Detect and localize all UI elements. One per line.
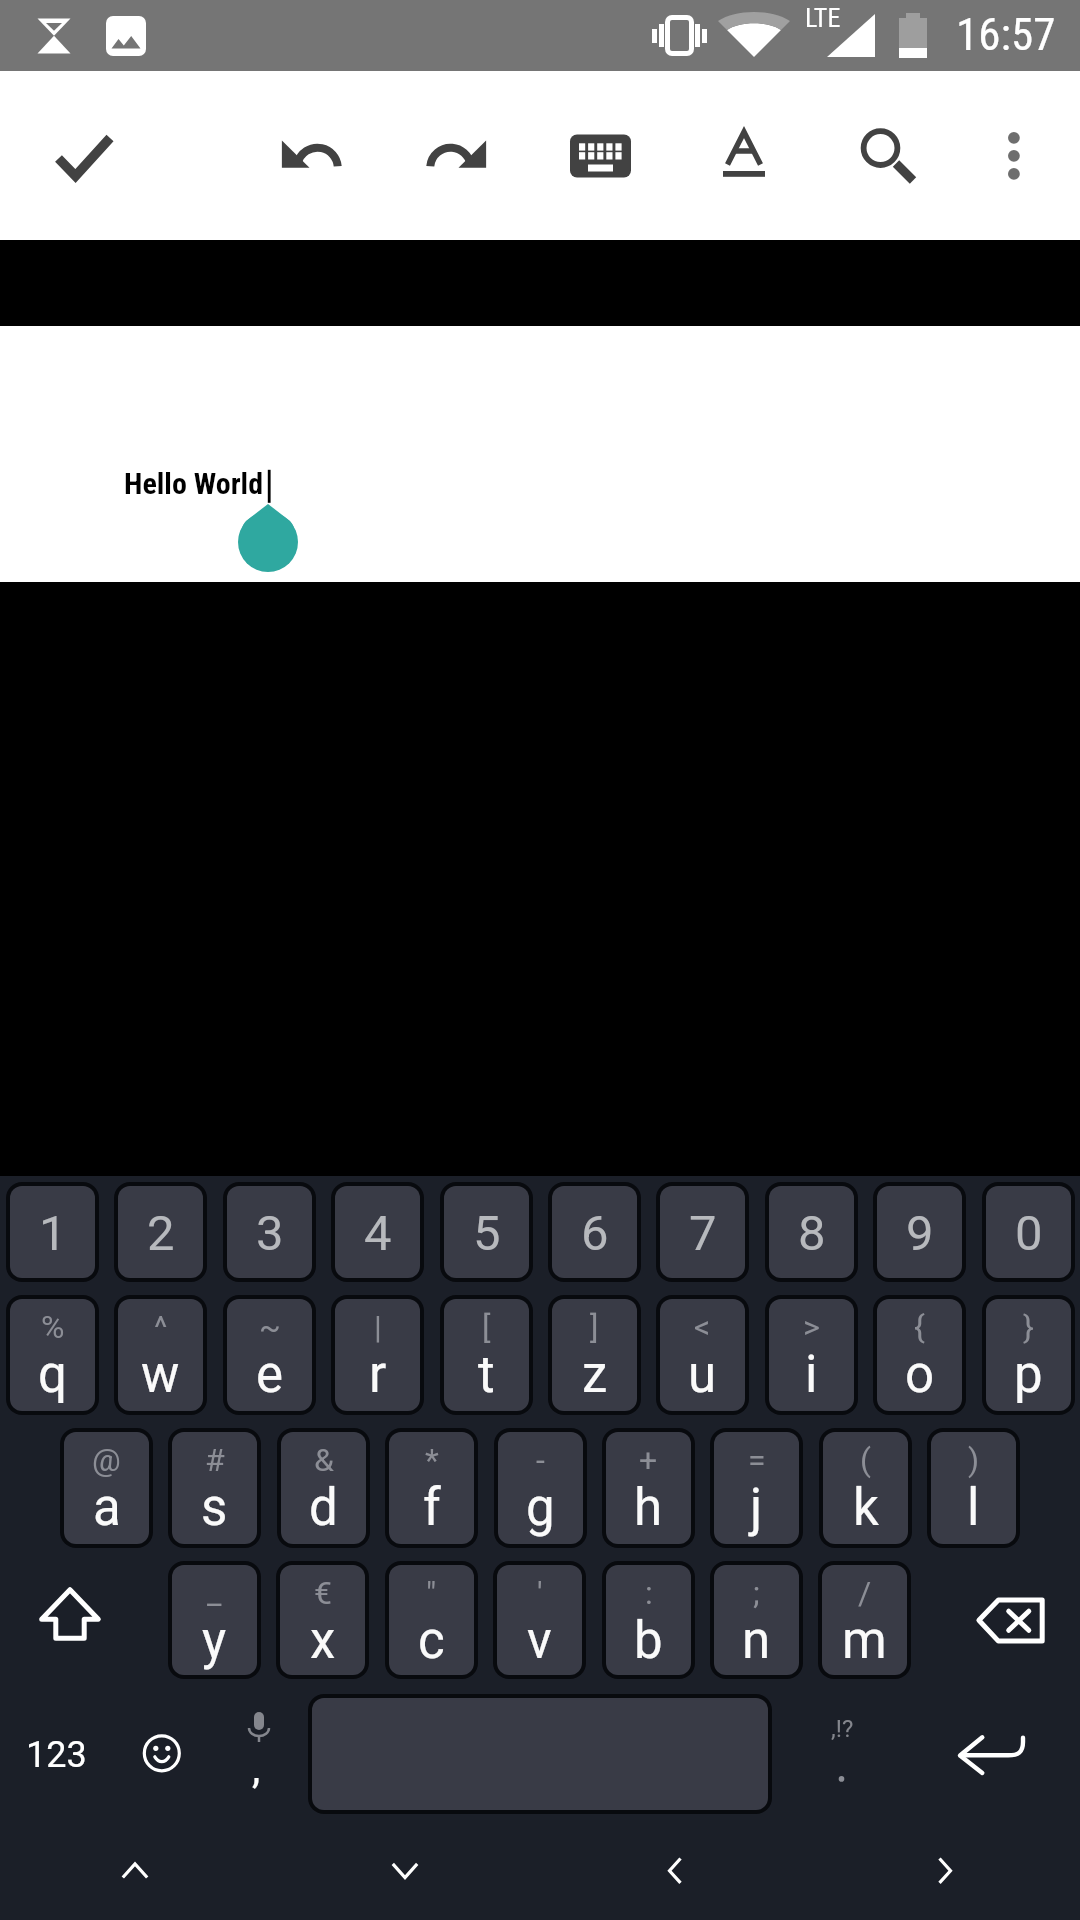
button[interactable]: * [389,1432,474,1544]
button[interactable]: % [10,1299,95,1411]
button[interactable]: ' [497,1565,582,1675]
staticText: ,!? [831,1715,854,1743]
button[interactable]: Search [838,109,930,201]
button[interactable]: 0 [986,1186,1071,1278]
button[interactable]: 6 [552,1186,637,1278]
button[interactable]: € [280,1565,365,1675]
button[interactable]: } [986,1299,1071,1411]
staticText: k [853,1478,879,1538]
button[interactable]: 4 [335,1186,420,1278]
button[interactable]: 2 [118,1186,203,1278]
staticText: 5 [473,1205,501,1262]
staticText: y [202,1611,227,1671]
staticText: h [634,1478,663,1538]
button[interactable]: Move right [810,1824,1080,1920]
staticText: : [645,1574,653,1612]
staticText: j [750,1478,763,1538]
staticText: i [805,1345,818,1405]
staticText: 4 [364,1205,392,1262]
button[interactable]: " [389,1565,474,1675]
button[interactable]: _ [172,1565,257,1675]
button[interactable]: ; [714,1565,799,1675]
staticText: | [374,1308,382,1346]
button[interactable]: Period [790,1694,900,1812]
button[interactable]: # [172,1432,257,1544]
button[interactable]: Shift [8,1561,128,1679]
staticText: 2 [147,1205,175,1262]
staticText: o [905,1345,935,1405]
staticText: LTE [805,3,841,33]
staticText: > [803,1308,820,1346]
staticText: w [141,1345,180,1405]
button[interactable]: Done [38,109,130,201]
button[interactable]: 9 [877,1186,962,1278]
staticText: b [634,1611,663,1671]
staticText: x [310,1611,336,1671]
staticText: - [536,1441,545,1479]
staticText: " [426,1574,437,1612]
staticText: ' [537,1574,543,1612]
button[interactable]: ~ [227,1299,312,1411]
button[interactable]: { [877,1299,962,1411]
button[interactable]: Backspace [940,1561,1072,1679]
button[interactable]: | [335,1299,420,1411]
button[interactable]: Redo [410,109,502,201]
button[interactable]: Numbers and symbols [4,1694,108,1812]
button[interactable]: < [660,1299,745,1411]
button[interactable]: / [822,1565,907,1675]
button[interactable]: Move left [540,1824,810,1920]
staticText: 3 [256,1205,284,1262]
staticText: 6 [581,1205,609,1262]
staticText: g [526,1478,555,1538]
button[interactable]: 3 [227,1186,312,1278]
button[interactable]: Emoji [120,1694,204,1812]
button[interactable]: = [714,1432,799,1544]
staticText: t [478,1345,495,1405]
staticText: ] [590,1308,599,1346]
staticText: < [694,1308,711,1346]
button[interactable]: ) [931,1432,1016,1544]
button[interactable]: 7 [660,1186,745,1278]
staticText: € [314,1574,332,1612]
staticText: _ [207,1574,222,1612]
button[interactable]: ] [552,1299,637,1411]
button[interactable]: > [769,1299,854,1411]
staticText: 0 [1015,1205,1043,1262]
button[interactable]: Move down [270,1824,540,1920]
button[interactable]: : [606,1565,691,1675]
button[interactable]: 1 [10,1186,95,1278]
staticText: d [309,1478,338,1538]
staticText: } [1023,1308,1034,1346]
staticText: 123 [26,1734,87,1776]
staticText: 7 [689,1205,717,1262]
staticText: , [252,1744,261,1793]
button[interactable]: Keyboard [554,109,646,201]
button[interactable]: & [281,1432,366,1544]
staticText: p [1014,1345,1043,1405]
button[interactable]: [ [444,1299,529,1411]
staticText: n [742,1611,771,1671]
button[interactable]: Text style [698,109,790,201]
button[interactable]: @ [64,1432,149,1544]
button[interactable]: ^ [118,1299,203,1411]
button[interactable]: Comma [225,1694,301,1812]
button[interactable]: 8 [769,1186,854,1278]
button[interactable]: ( [823,1432,908,1544]
staticText: e [256,1345,284,1405]
button[interactable]: Move up [0,1824,270,1920]
staticText: # [205,1441,225,1479]
button[interactable]: Enter [930,1694,1072,1812]
button[interactable]: + [606,1432,691,1544]
staticText: q [38,1345,67,1405]
staticText: c [418,1611,445,1671]
button[interactable]: More options [968,109,1060,201]
staticText: + [639,1441,658,1479]
staticText: m [842,1611,887,1671]
staticText: v [527,1611,552,1671]
staticText: s [201,1478,228,1538]
button[interactable]: Undo [266,109,358,201]
staticText: % [41,1308,65,1346]
button[interactable]: 5 [444,1186,529,1278]
button[interactable]: - [498,1432,583,1544]
